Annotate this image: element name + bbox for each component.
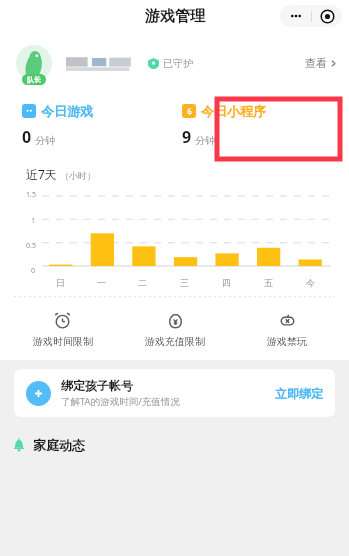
staticText: 日 (56, 277, 65, 288)
button[interactable]: 游戏禁玩 (231, 309, 343, 350)
staticText: 查看 (305, 56, 327, 70)
staticText: 队长 (27, 75, 41, 84)
button[interactable]: 游戏充值限制 (119, 309, 231, 350)
staticText: 游戏禁玩 (267, 335, 307, 348)
button[interactable]: 绑定孩子帐号 (14, 369, 335, 417)
button[interactable]: 家庭动态 (0, 433, 349, 457)
staticText: 绑定孩子帐号 (61, 378, 133, 393)
button[interactable]: Close mini program (312, 5, 342, 27)
button[interactable]: 今日游戏 (22, 94, 174, 148)
staticText: 四 (222, 277, 231, 288)
button[interactable]: 游戏时间限制 (6, 309, 119, 350)
staticText: 已守护 (163, 57, 193, 70)
staticText: 1 (31, 216, 36, 224)
staticText: 分钟 (195, 134, 215, 147)
staticText: 今日小程序 (201, 103, 266, 119)
staticText: 近7天 (26, 166, 57, 182)
staticText: 分钟 (35, 134, 55, 147)
button[interactable]: 立即绑定 (275, 386, 323, 401)
staticText: 三 (180, 277, 189, 288)
staticText: 1.5 (26, 190, 36, 198)
staticText: 今 (306, 277, 315, 288)
staticText: 游戏管理 (145, 7, 205, 26)
staticText: 0 (31, 266, 36, 274)
button[interactable]: 队长 (0, 32, 349, 94)
staticText: 一 (97, 277, 106, 288)
button[interactable]: More options (280, 5, 311, 27)
staticText: 游戏时间限制 (33, 335, 93, 348)
staticText: 家庭动态 (33, 437, 85, 453)
staticText: 9 (182, 126, 192, 148)
staticText: 了解TA的游戏时间/充值情况 (61, 395, 180, 408)
staticText: 二 (138, 277, 147, 288)
staticText: 0 (22, 126, 32, 148)
staticText: 0.5 (26, 241, 36, 249)
staticText: （小时） (60, 170, 96, 181)
staticText: 五 (264, 277, 273, 288)
staticText: 今日游戏 (41, 103, 93, 119)
button[interactable]: 今日小程序 (182, 94, 349, 148)
staticText: 游戏充值限制 (145, 335, 205, 348)
